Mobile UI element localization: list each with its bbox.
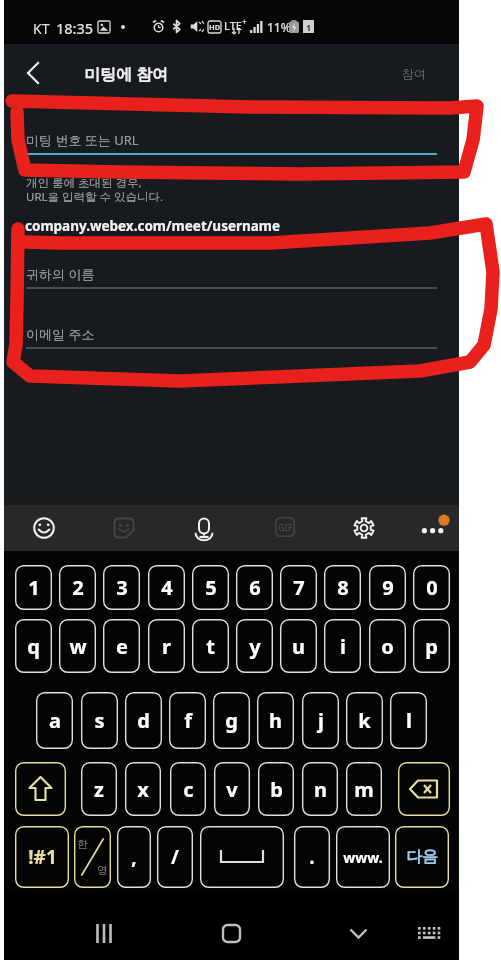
staticText: 귀하의 이름 [26,265,95,283]
button[interactable]: i [324,619,361,673]
staticText: 5 [205,574,217,601]
staticText: z [94,776,104,803]
button[interactable]: k [346,692,383,749]
staticText: a [49,707,61,734]
button[interactable]: !#1 [15,826,69,888]
button[interactable] [15,762,66,816]
button[interactable] [398,762,450,816]
staticText: f [184,707,192,734]
button[interactable]: f [169,692,206,749]
button[interactable]: Switch keyboard [403,907,455,959]
button[interactable]: . [294,826,330,888]
staticText: 1 [306,21,312,33]
button[interactable]: Recents [78,907,130,959]
staticText: 7 [293,574,305,601]
button[interactable]: 7 [280,565,317,610]
button[interactable]: 4 [148,565,185,610]
staticText: 11% [267,19,291,35]
button[interactable]: More options [411,513,449,551]
button[interactable]: 5 [192,565,229,610]
staticText: 1 [28,574,40,601]
button[interactable]: 8 [324,565,361,610]
staticText: 3 [116,574,128,601]
button[interactable]: GIF [275,517,295,537]
button[interactable]: 6 [236,565,273,610]
staticText: d [137,707,150,734]
staticText: KT [33,19,50,38]
button[interactable]: / [157,826,193,888]
button[interactable]: Voice input [193,517,215,539]
button[interactable]: Hide keyboard [332,907,384,959]
button[interactable]: t [192,619,229,673]
staticText: k [358,707,371,734]
button[interactable]: Stickers [113,517,135,539]
staticText: !#1 [28,844,57,870]
button[interactable]: 1 [15,565,52,610]
staticText: 18:35 [56,18,94,38]
staticText: n [314,776,327,803]
staticText: 다음 [406,847,438,867]
staticText: 2 [72,574,84,601]
button[interactable]: 다음 [395,826,449,888]
button[interactable]: r [148,619,185,673]
staticText: company.webex.com/meet/username [25,217,281,235]
staticText: l [406,707,412,734]
button[interactable]: 3 [103,565,140,610]
staticText: u [292,633,305,660]
button[interactable]: o [369,619,406,673]
button[interactable]: m [346,762,382,816]
button[interactable]: g [213,692,250,749]
staticText: r [162,633,171,660]
staticText: , [131,844,137,870]
staticText: 참여 [402,66,426,81]
button[interactable]: c [170,762,206,816]
staticText: 4 [161,574,173,601]
staticText: 미팅 번호 또는 URL [26,131,139,149]
button[interactable]: 참여 [389,54,439,92]
button[interactable]: 2 [59,565,96,610]
button[interactable]: Back [9,49,57,97]
staticText: 한 [77,837,88,851]
button[interactable]: q [15,619,52,673]
staticText: o [381,633,394,660]
staticText: x [137,776,149,803]
button[interactable]: z [81,762,117,816]
button[interactable]: h [257,692,294,749]
button[interactable]: b [258,762,294,816]
staticText: + [242,16,247,27]
staticText: 개인 룸에 초대된 경우, [26,175,142,191]
staticText: . [309,844,315,870]
button[interactable]: n [302,762,338,816]
staticText: q [27,633,40,660]
button[interactable]: 한 [74,826,111,888]
staticText: 9 [382,574,394,601]
staticText: v [226,776,238,803]
button[interactable]: d [125,692,162,749]
staticText: / [171,844,179,870]
button[interactable]: u [280,619,317,673]
button[interactable]: p [413,619,450,673]
staticText: 미팅에 참여 [84,63,169,85]
button[interactable]: a [36,692,73,749]
button[interactable]: Home [205,907,257,959]
button[interactable]: www. [336,826,390,888]
staticText: w [69,633,87,660]
button[interactable]: j [302,692,339,749]
button[interactable]: y [236,619,273,673]
button[interactable]: e [103,619,140,673]
button[interactable]: l [390,692,427,749]
button[interactable]: w [59,619,96,673]
button[interactable]: , [117,826,151,888]
button[interactable]: s [81,692,118,749]
staticText: 이메일 주소 [26,325,95,343]
button[interactable]: v [214,762,250,816]
button[interactable] [200,826,284,888]
button[interactable]: x [125,762,161,816]
staticText: i [340,633,346,660]
staticText: LTE [224,18,242,33]
staticText: g [225,707,238,734]
button[interactable]: Emoji [33,517,55,539]
button[interactable]: 9 [369,565,406,610]
button[interactable]: 0 [413,565,450,610]
button[interactable]: Settings [353,517,375,539]
